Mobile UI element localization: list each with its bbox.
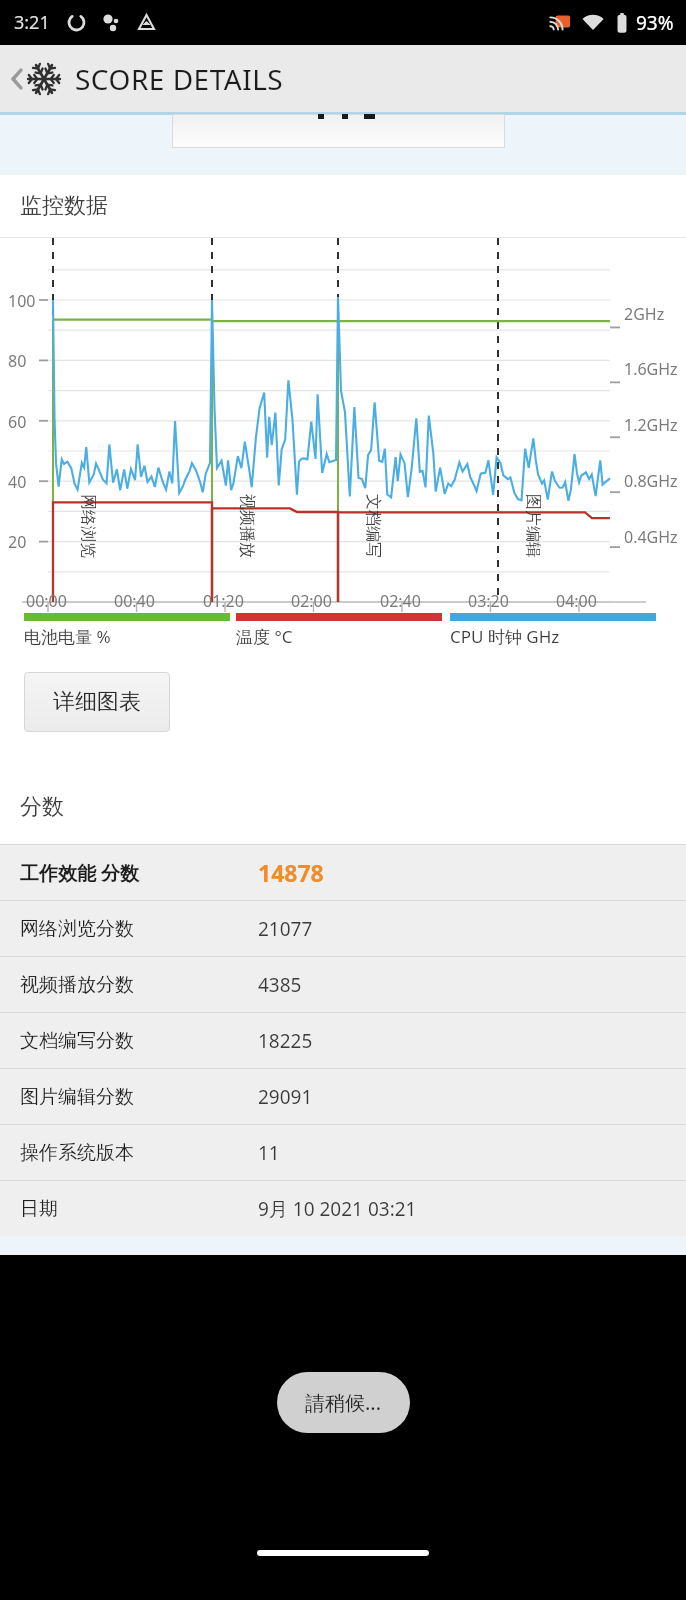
staticText: 02:40	[380, 590, 421, 612]
button[interactable]: 工作效能 分数	[0, 845, 686, 900]
staticText: 监控数据	[20, 192, 108, 220]
staticText: 11	[258, 1140, 280, 1166]
staticText: 电池电量 %	[24, 625, 111, 648]
staticText: 14878	[258, 857, 324, 888]
staticText: 操作系统版本	[20, 1141, 134, 1165]
staticText: CPU 时钟 GHz	[450, 625, 560, 648]
button[interactable]: 日期	[0, 1181, 686, 1236]
staticText: 29091	[258, 1084, 313, 1110]
staticText: 03:20	[468, 590, 509, 612]
staticText: 20	[8, 531, 27, 553]
button[interactable]: 請稍候...	[277, 1372, 410, 1433]
staticText: 网络浏览分数	[20, 917, 134, 941]
button[interactable]: 网络浏览分数	[0, 901, 686, 956]
staticText: 請稍候...	[305, 1389, 382, 1416]
staticText: 3:21	[14, 10, 50, 35]
staticText: 视频播放	[237, 494, 257, 558]
staticText: 9月 10 2021 03:21	[258, 1196, 417, 1222]
staticText: 93%	[636, 10, 674, 36]
staticText: 21077	[258, 916, 313, 942]
staticText: 图片编辑分数	[20, 1085, 134, 1109]
staticText: 文档编写	[363, 494, 383, 558]
staticText: 视频播放分数	[20, 973, 134, 997]
staticText: 日期	[20, 1197, 58, 1221]
staticText: 01:20	[203, 590, 244, 612]
button[interactable]: 操作系统版本	[0, 1125, 686, 1180]
staticText: 80	[8, 350, 27, 372]
staticText: 100	[8, 290, 36, 312]
staticText: 分数	[20, 793, 64, 821]
staticText: 工作效能 分数	[20, 860, 139, 886]
staticText: 0.8GHz	[624, 470, 678, 492]
staticText: 18225	[258, 1028, 313, 1054]
staticText: 04:00	[556, 590, 597, 612]
staticText: 60	[8, 411, 27, 433]
staticText: 02:00	[291, 590, 332, 612]
button[interactable]: 文档编写分数	[0, 1013, 686, 1068]
staticText: SCORE DETAILS	[75, 60, 284, 98]
staticText: 40	[8, 471, 27, 493]
staticText: 00:00	[26, 590, 67, 612]
staticText: 00:40	[114, 590, 155, 612]
staticText: 4385	[258, 972, 302, 998]
staticText: 1.6GHz	[624, 358, 678, 380]
staticText: 温度 °C	[236, 625, 293, 648]
staticText: 详细图表	[53, 688, 141, 716]
staticText: 1.2GHz	[624, 414, 678, 436]
staticText: 文档编写分数	[20, 1029, 134, 1053]
button[interactable]: Back	[8, 60, 284, 98]
staticText: 图片编辑	[523, 494, 543, 558]
staticText: 网络浏览	[78, 494, 98, 558]
staticText: 0.4GHz	[624, 526, 678, 548]
button[interactable]: 详细图表	[24, 672, 170, 732]
button[interactable]: 视频播放分数	[0, 957, 686, 1012]
button[interactable]: 图片编辑分数	[0, 1069, 686, 1124]
staticText: 2GHz	[624, 303, 665, 325]
